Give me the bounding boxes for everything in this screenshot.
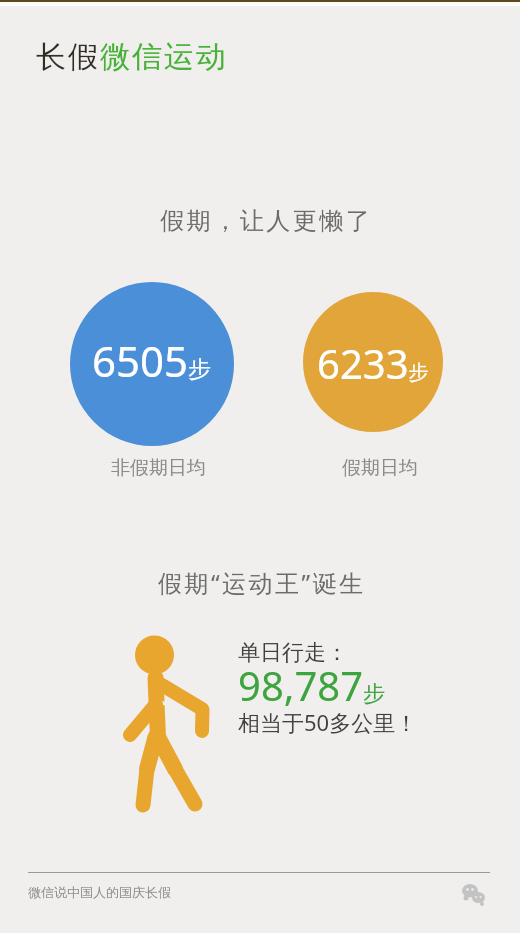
staticText: 相当于50多公里！: [238, 707, 418, 737]
staticText: 微信运动: [99, 38, 227, 76]
button[interactable]: 6233步: [303, 292, 443, 432]
staticText: 假期日均: [342, 456, 418, 480]
staticText: 单日行走：: [238, 639, 348, 667]
staticText: 6505步: [92, 332, 212, 389]
staticText: 6233步: [317, 336, 429, 390]
staticText: 长假: [35, 38, 99, 76]
staticText: 假期，让人更懒了: [159, 206, 371, 236]
button[interactable]: 长假: [35, 38, 227, 76]
button[interactable]: [462, 884, 488, 908]
staticText: 假期“运动王”诞生: [158, 566, 366, 599]
button[interactable]: 6505步: [70, 282, 234, 446]
staticText: 98,787步: [238, 658, 386, 712]
staticText: 非假期日均: [111, 456, 206, 480]
staticText: 微信说中国人的国庆长假: [28, 884, 171, 900]
